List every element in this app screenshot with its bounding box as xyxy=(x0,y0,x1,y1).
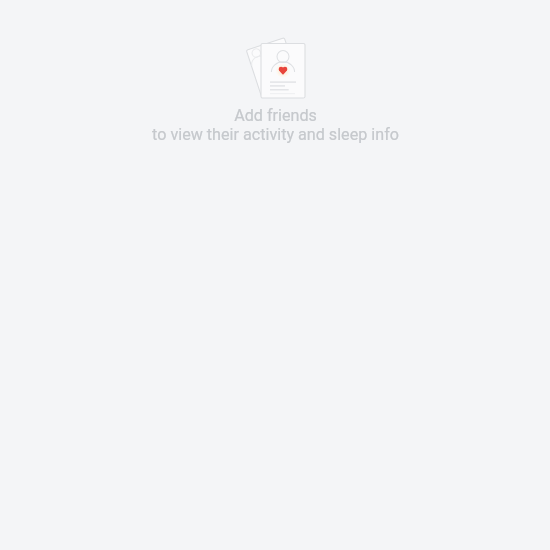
other: Friend cards illustration xyxy=(244,37,306,99)
staticText: Add friends to view their activity and s… xyxy=(152,106,399,144)
